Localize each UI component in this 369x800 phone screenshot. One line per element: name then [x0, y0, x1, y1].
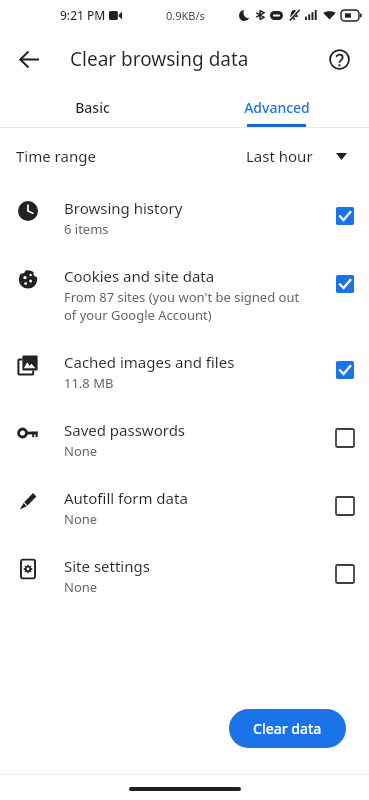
button[interactable]: Checked [328, 199, 362, 233]
staticText: 6 items [64, 220, 109, 238]
button[interactable]: Checked [328, 267, 362, 301]
staticText: Clear browsing data [70, 46, 249, 72]
staticText: From 87 sites (you won't be signed out o… [64, 288, 300, 324]
staticText: Advanced [244, 98, 310, 117]
staticText: Saved passwords [64, 420, 186, 440]
staticText: Last hour [246, 146, 313, 166]
staticText: Cookies and site data [64, 266, 215, 286]
button[interactable]: Browsing history [0, 184, 369, 252]
button[interactable]: Cached images and files [0, 338, 369, 406]
staticText: None [64, 510, 98, 528]
button[interactable]: Unchecked [328, 557, 362, 591]
button[interactable]: Autofill form data [0, 474, 369, 542]
staticText: None [64, 442, 98, 460]
button[interactable]: Unchecked [328, 489, 362, 523]
staticText: Clear data [253, 719, 322, 738]
button[interactable]: Unchecked [328, 421, 362, 455]
button[interactable]: Back [7, 37, 51, 81]
staticText: 9:21 PM [60, 7, 106, 23]
staticText: None [64, 578, 98, 596]
button[interactable]: Saved passwords [0, 406, 369, 474]
staticText: Basic [75, 98, 110, 117]
button[interactable]: Help [319, 39, 359, 79]
button[interactable]: Advanced [184, 88, 369, 127]
staticText: Browsing history [64, 198, 183, 218]
staticText: 0.9KB/s [166, 8, 205, 23]
staticText: 11.8 MB [64, 374, 114, 392]
button[interactable]: Basic [0, 88, 184, 127]
button[interactable]: Checked [328, 353, 362, 387]
staticText: Site settings [64, 556, 150, 576]
staticText: Time range [16, 146, 96, 166]
staticText: Autofill form data [64, 488, 188, 508]
button[interactable]: Time range [0, 128, 369, 184]
button[interactable]: Clear data [229, 709, 346, 748]
button[interactable]: Site settings [0, 542, 369, 610]
button[interactable]: Cookies and site data [0, 252, 369, 338]
staticText: Cached images and files [64, 352, 235, 372]
